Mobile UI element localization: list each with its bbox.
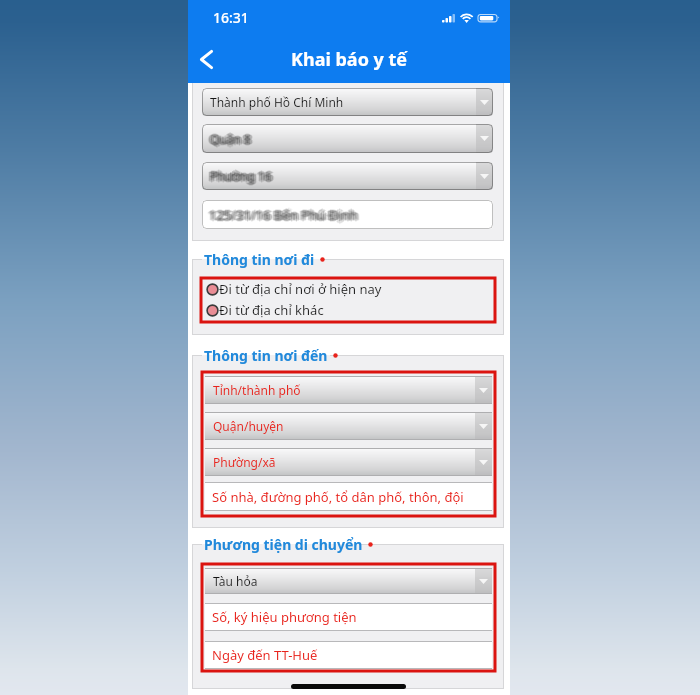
staticText: 125/31/16 Bến Phú Định [207,206,356,224]
button[interactable]: Thông tin nơi đến [204,346,339,364]
staticText: Đi từ địa chỉ khác [219,301,324,319]
staticText: 125/31/16 Bến Phú Định [212,206,361,224]
staticText: 125/31/16 Bến Phú Định [209,208,358,226]
staticText: 125/31/16 Bến Phú Định [209,205,358,223]
staticText: Quận 8 [210,132,251,148]
button[interactable]: Đi từ địa chỉ khác [206,301,406,319]
button[interactable]: Quận 8 [202,124,493,153]
staticText: Quận 8 [210,129,251,145]
staticText: Thành phố Hồ Chí Minh [210,94,344,110]
staticText: Quận 8 [208,131,249,147]
staticText: Phường 16 [212,167,274,183]
staticText: 125/31/16 Bến Phú Định [208,206,357,224]
staticText: Phường 16 [210,167,272,183]
staticText: 125/31/16 Bến Phú Định [209,206,358,224]
button[interactable]: 125/31/16 Bến Phú Định [202,200,493,229]
staticText: Quận 8 [212,131,253,147]
staticText: Phường 16 [210,169,272,185]
staticText: Quận 8 [212,130,253,146]
staticText: Quận 8 [212,131,253,147]
staticText: Phường 16 [209,167,271,183]
staticText: Quận/huyện [213,418,284,434]
staticText: Phường 16 [208,169,270,185]
staticText: Phường 16 [209,169,271,185]
staticText: Phường 16 [208,168,270,184]
staticText: Quận 8 [211,130,252,146]
staticText: 125/31/16 Bến Phú Định [207,206,356,224]
staticText: Thông tin nơi đi [204,250,315,268]
staticText: 125/31/16 Bến Phú Định [207,205,356,223]
staticText: 125/31/16 Bến Phú Định [209,207,358,225]
staticText: Phường/xã [213,454,276,470]
staticText: Phường 16 [210,169,272,185]
staticText: Quận 8 [211,131,252,147]
staticText: 125/31/16 Bến Phú Định [210,207,359,225]
staticText: Số nhà, đường phố, tổ dân phố, thôn, đội [212,488,464,506]
staticText: 125/31/16 Bến Phú Định [210,205,359,223]
staticText: Quận 8 [209,130,250,146]
button[interactable]: Phường/xã [205,448,492,476]
staticText: 125/31/16 Bến Phú Định [206,206,355,224]
staticText: Phường 16 [210,170,272,186]
staticText: 125/31/16 Bến Phú Định [210,206,359,224]
staticText: 125/31/16 Bến Phú Định [207,207,356,225]
staticText: Quận 8 [210,130,251,146]
staticText: Phường 16 [210,166,272,182]
staticText: Ngày đến TT-Huế [212,646,318,664]
staticText: Tàu hỏa [213,573,258,589]
staticText: 125/31/16 Bến Phú Định [208,205,357,223]
staticText: Tỉnh/thành phố [213,382,301,398]
staticText: 125/31/16 Bến Phú Định [209,204,358,222]
staticText: 125/31/16 Bến Phú Định [211,206,360,224]
staticText: Thông tin nơi đến [204,346,328,364]
staticText: Quận 8 [210,133,251,149]
button[interactable]: Đi từ địa chỉ nơi ở hiện nay [206,280,468,298]
staticText: Quận 8 [209,132,250,148]
button[interactable]: Số, ký hiệu phương tiện [205,603,492,631]
staticText: Quận 8 [211,132,252,148]
staticText: Phường 16 [211,167,273,183]
button[interactable]: Phương tiện di chuyển [204,535,374,553]
staticText: Phương tiện di chuyển [204,535,363,553]
staticText: Phường 16 [212,168,274,184]
staticText: Phường 16 [212,169,274,185]
button[interactable]: Tỉnh/thành phố [205,376,492,404]
staticText: 125/31/16 Bến Phú Định [208,207,357,225]
button[interactable]: Quận/huyện [205,412,492,440]
button[interactable]: Thông tin nơi đi [204,250,326,268]
staticText: Phường 16 [210,168,272,184]
staticText: Quận 8 [210,131,251,147]
staticText: Quận 8 [213,131,254,147]
staticText: Quận 8 [210,130,251,146]
staticText: Phường 16 [208,168,270,184]
staticText: Quận 8 [208,132,249,148]
staticText: Quận 8 [208,130,249,146]
staticText: 16:31 [213,8,249,27]
button[interactable]: Tàu hỏa [205,568,492,594]
staticText: Phường 16 [211,169,273,185]
button[interactable]: Thành phố Hồ Chí Minh [202,88,493,116]
staticText: Phường 16 [212,168,274,184]
staticText: Phường 16 [209,168,271,184]
staticText: Quận 8 [212,132,253,148]
staticText: 125/31/16 Bến Phú Định [209,205,358,223]
button[interactable]: Phường 16 [202,162,493,190]
staticText: Quận 8 [209,131,250,147]
staticText: Đi từ địa chỉ nơi ở hiện nay [219,280,382,298]
staticText: Phường 16 [211,168,273,184]
staticText: 125/31/16 Bến Phú Định [211,206,360,224]
staticText: Phường 16 [208,167,270,183]
staticText: Phường 16 [210,167,272,183]
staticText: Phường 16 [207,168,269,184]
staticText: Số, ký hiệu phương tiện [212,608,357,626]
button[interactable]: Back [188,39,229,83]
staticText: Phường 16 [213,168,275,184]
staticText: 125/31/16 Bến Phú Định [211,207,360,225]
staticText: Khai báo y tế [291,47,408,72]
staticText: Quận 8 [207,131,248,147]
button[interactable]: Ngày đến TT-Huế [205,641,492,669]
staticText: Quận 8 [210,132,251,148]
staticText: 125/31/16 Bến Phú Định [211,205,360,223]
button[interactable]: Số nhà, đường phố, tổ dân phố, thôn, đội [205,482,492,511]
staticText: Quận 8 [208,131,249,147]
